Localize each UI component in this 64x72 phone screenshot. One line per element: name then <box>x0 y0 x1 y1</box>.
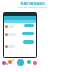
button[interactable]: Chat <box>2 61 6 65</box>
button[interactable]: Contact avatar <box>5 33 8 36</box>
button[interactable] <box>24 24 34 27</box>
button[interactable]: Contact avatar <box>5 45 8 48</box>
button[interactable]: Contact avatar <box>5 25 8 28</box>
button[interactable] <box>8 33 16 36</box>
button[interactable] <box>8 45 15 48</box>
button[interactable]: Contacts <box>27 60 31 64</box>
staticText: SEND MESSAGES <box>20 2 45 6</box>
button[interactable]: Alerts <box>8 60 12 64</box>
button[interactable]: Favorites <box>33 61 37 65</box>
button[interactable] <box>23 40 34 44</box>
button[interactable] <box>22 32 34 35</box>
button[interactable]: Messages <box>17 59 24 66</box>
button[interactable] <box>8 25 14 28</box>
staticText: WITH THE GREATEST OF EASE <box>17 6 48 9</box>
